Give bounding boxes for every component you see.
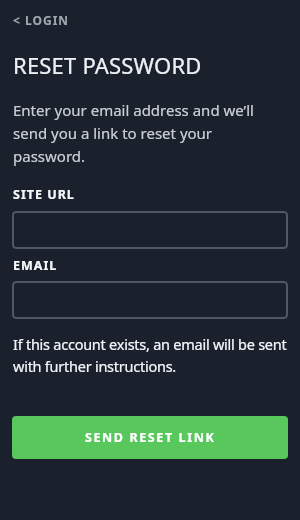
staticText: If this account exists, an email will be… [13,334,287,376]
staticText: SITE URL [13,186,75,203]
button[interactable]: < LOGIN [8,8,75,32]
staticText: EMAIL [13,257,58,274]
button[interactable] [12,281,288,319]
staticText: RESET PASSWORD [13,50,202,80]
button[interactable] [12,211,288,249]
button[interactable]: SEND RESET LINK [12,416,288,459]
staticText: < LOGIN [13,12,70,28]
staticText: Enter your email address and we’ll send … [13,100,254,167]
staticText: SEND RESET LINK [85,429,216,446]
